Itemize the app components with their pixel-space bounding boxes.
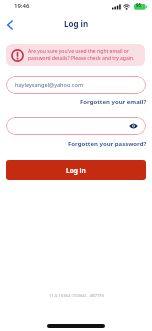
button[interactable] bbox=[6, 20, 14, 30]
staticText: Forgotten your password? bbox=[68, 140, 147, 148]
button[interactable]: Forgotten your password? bbox=[68, 140, 147, 148]
staticText: Log in bbox=[66, 166, 86, 175]
staticText: Log in bbox=[64, 18, 89, 29]
staticText: password details? Please check and try a… bbox=[28, 55, 135, 62]
staticText: 95 bbox=[136, 2, 142, 8]
staticText: 19:46 bbox=[14, 2, 30, 10]
button[interactable]: Forgotten your email? bbox=[80, 98, 147, 106]
staticText: Forgotten your email? bbox=[80, 98, 147, 106]
staticText: hayleysangel@yahoo.com bbox=[15, 81, 84, 89]
button[interactable]: hayleysangel@yahoo.com bbox=[6, 76, 146, 94]
staticText: 11.0.10364 (10364) - 4B77F3 bbox=[49, 293, 104, 299]
button[interactable]: Log in bbox=[6, 160, 146, 180]
staticText: Are you sure you've used the right email… bbox=[28, 48, 129, 55]
button[interactable] bbox=[6, 117, 146, 135]
